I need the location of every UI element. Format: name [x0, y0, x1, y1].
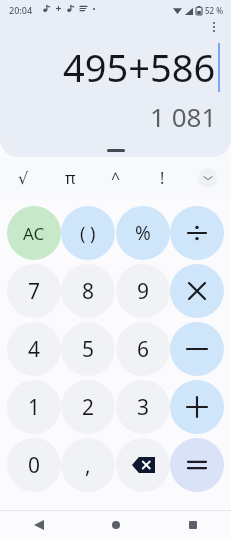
button[interactable]: AC — [7, 206, 61, 260]
button[interactable]: 1 — [7, 380, 61, 434]
button[interactable]: % — [116, 206, 170, 260]
button[interactable]: √ — [0, 157, 47, 199]
staticText: 5 — [82, 335, 95, 364]
button[interactable]: ! — [139, 157, 185, 199]
button[interactable]: 5 — [61, 322, 115, 376]
button[interactable]: ( ) — [61, 206, 115, 260]
staticText: AC — [23, 222, 45, 245]
staticText: 7 — [28, 277, 41, 306]
button[interactable]: 7 — [7, 264, 61, 318]
staticText: 8 — [82, 277, 95, 306]
button[interactable]: 6 — [116, 322, 170, 376]
button[interactable]: Multiply — [170, 264, 224, 318]
button[interactable]: Backspace — [116, 438, 170, 492]
button[interactable]: 3 — [116, 380, 170, 434]
staticText: 4 — [28, 335, 41, 364]
button[interactable]: Subtract — [170, 322, 224, 376]
staticText: , — [85, 451, 91, 480]
staticText: % — [135, 220, 151, 246]
button[interactable]: 9 — [116, 264, 170, 318]
button[interactable]: Equals — [170, 438, 224, 492]
button[interactable]: 4 — [7, 322, 61, 376]
button[interactable]: 2 — [61, 380, 115, 434]
staticText: 52 % — [205, 5, 224, 16]
button[interactable]: Recent apps — [154, 510, 231, 540]
staticText: 0 — [28, 451, 41, 480]
staticText: ! — [160, 167, 165, 189]
staticText: 6 — [137, 335, 150, 364]
staticText: 2 — [82, 393, 95, 422]
staticText: √ — [18, 169, 29, 188]
staticText: 3 — [137, 393, 150, 422]
button[interactable]: Home — [77, 510, 154, 540]
staticText: 1 — [28, 393, 41, 422]
button[interactable]: Divide — [170, 206, 224, 260]
button[interactable]: Expand functions — [198, 168, 218, 188]
button[interactable]: , — [61, 438, 115, 492]
button[interactable]: More options — [207, 19, 221, 35]
button[interactable]: 0 — [7, 438, 61, 492]
staticText: 495+586 — [63, 41, 216, 93]
staticText: π — [65, 167, 76, 189]
button[interactable]: ^ — [93, 157, 139, 199]
staticText: 9 — [137, 277, 150, 306]
button[interactable]: Back — [0, 510, 77, 540]
button[interactable]: Add — [170, 380, 224, 434]
staticText: ^ — [111, 167, 121, 189]
staticText: 20:04 — [9, 4, 33, 16]
staticText: ( ) — [80, 221, 96, 246]
button[interactable]: π — [47, 157, 93, 199]
staticText: 1 081 — [150, 99, 217, 134]
button[interactable]: 8 — [61, 264, 115, 318]
